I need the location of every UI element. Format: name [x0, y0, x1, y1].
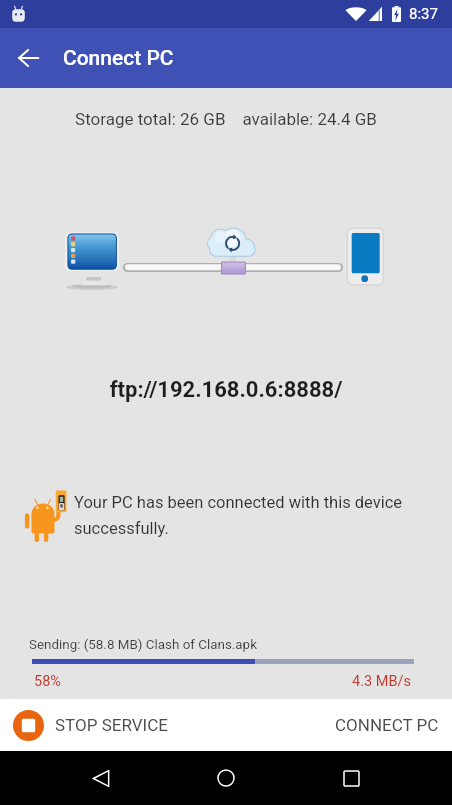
- button[interactable]: STOP SERVICE: [0, 699, 182, 751]
- staticText: Your PC has been connected with this dev…: [74, 493, 419, 538]
- staticText: Connect PC: [63, 46, 174, 71]
- button[interactable]: Recents: [327, 754, 375, 802]
- button[interactable]: Back: [6, 36, 50, 80]
- staticText: ftp://192.168.0.6:8888/: [0, 377, 452, 403]
- staticText: STOP SERVICE: [55, 715, 168, 735]
- staticText: 4.3 MB/s: [352, 673, 411, 690]
- staticText: 58%: [34, 673, 61, 690]
- staticText: Sending: (58.8 MB) Clash of Clans.apk: [29, 637, 257, 653]
- staticText: 8:37: [409, 5, 438, 23]
- staticText: Storage total: 26 GB available: 24.4 GB: [0, 109, 452, 129]
- staticText: CONNECT PC: [335, 715, 439, 735]
- button[interactable]: CONNECT PC: [322, 699, 452, 751]
- button[interactable]: Home: [202, 754, 250, 802]
- button[interactable]: Back: [77, 754, 125, 802]
